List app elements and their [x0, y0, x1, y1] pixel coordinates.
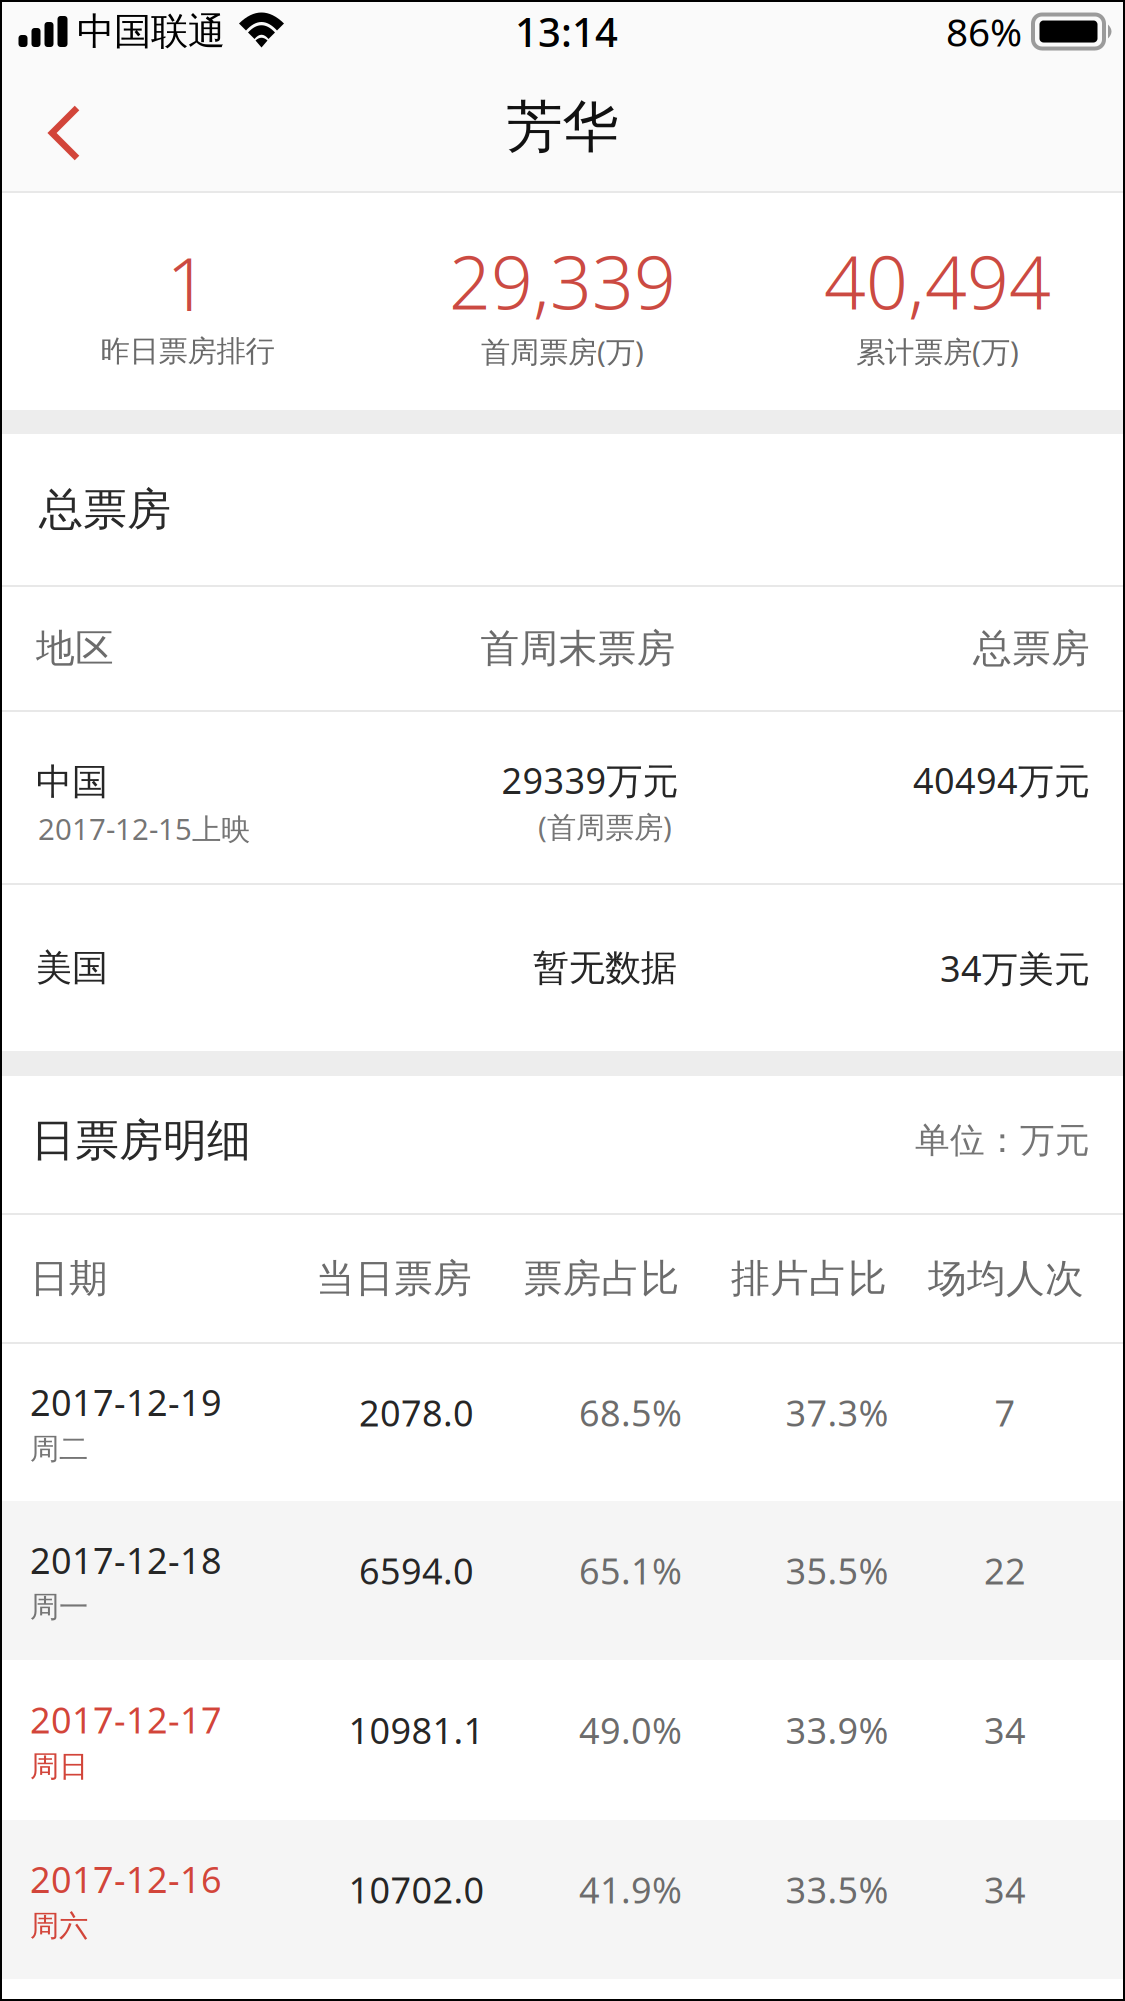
staticText: 2017-12-18: [30, 1536, 222, 1584]
staticText: 2017-12-16: [30, 1855, 222, 1903]
staticText: (首周票房): [538, 807, 672, 846]
staticText: 33.9%: [785, 1706, 888, 1754]
staticText: 中国联通: [77, 9, 225, 54]
staticText: 首周末票房: [480, 625, 675, 672]
staticText: 10702.0: [348, 1866, 484, 1913]
staticText: 34万美元: [940, 944, 1090, 992]
staticText: 2017-12-17: [30, 1696, 222, 1743]
staticText: 22: [984, 1547, 1026, 1594]
staticText: 日期: [30, 1255, 108, 1302]
staticText: 13:14: [515, 5, 618, 58]
staticText: 地区: [36, 625, 114, 672]
staticText: 6594.0: [359, 1547, 474, 1594]
staticText: 10981.1: [348, 1706, 484, 1754]
staticText: 单位：万元: [915, 1119, 1090, 1162]
staticText: 排片占比: [731, 1255, 887, 1302]
staticText: 34: [984, 1706, 1026, 1754]
staticText: 2078.0: [359, 1389, 474, 1436]
staticText: 总票房: [973, 625, 1090, 672]
staticText: 昨日票房排行: [100, 333, 274, 369]
staticText: 场均人次: [928, 1255, 1084, 1302]
staticText: 33.5%: [785, 1866, 888, 1913]
staticText: 总票房: [39, 482, 171, 536]
staticText: 7: [994, 1389, 1015, 1436]
staticText: 34: [984, 1866, 1026, 1913]
staticText: 日票房明细: [31, 1113, 251, 1167]
staticText: 暂无数据: [533, 946, 677, 990]
staticText: 2017-12-15上映: [38, 809, 250, 848]
staticText: 29339万元: [501, 756, 678, 804]
staticText: 首周票房(万): [481, 332, 644, 371]
staticText: 累计票房(万): [856, 332, 1019, 371]
staticText: 中国: [36, 760, 108, 804]
staticText: 当日票房: [316, 1255, 472, 1302]
staticText: 票房占比: [523, 1255, 679, 1302]
staticText: 周二: [30, 1431, 88, 1467]
staticText: 35.5%: [785, 1547, 888, 1594]
staticText: 周六: [30, 1908, 88, 1944]
staticText: 65.1%: [579, 1547, 682, 1594]
staticText: 美国: [36, 946, 108, 990]
staticText: 40,494: [824, 232, 1051, 330]
staticText: 周日: [30, 1748, 88, 1784]
staticText: 芳华: [506, 93, 618, 161]
staticText: 1: [166, 234, 208, 331]
staticText: 40494万元: [913, 756, 1090, 804]
staticText: 68.5%: [579, 1389, 682, 1436]
button[interactable]: 返回: [0, 63, 119, 191]
staticText: 29,339: [449, 232, 676, 330]
staticText: 2017-12-19: [30, 1378, 222, 1426]
staticText: 周一: [30, 1589, 88, 1625]
staticText: 49.0%: [579, 1706, 682, 1754]
staticText: 37.3%: [785, 1389, 888, 1436]
staticText: 86%: [946, 6, 1022, 57]
staticText: 41.9%: [579, 1866, 682, 1913]
